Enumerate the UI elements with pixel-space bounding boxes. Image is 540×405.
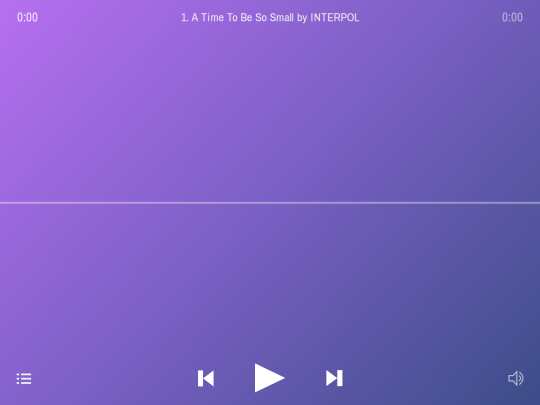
staticText: 1. A Time To Be So Small by INTERPOL xyxy=(181,9,359,25)
button[interactable]: Play xyxy=(248,356,292,400)
button[interactable]: Previous track xyxy=(188,360,224,396)
button[interactable]: Next track xyxy=(316,360,352,396)
staticText: 0:00 xyxy=(502,8,523,26)
staticText: 0:00 xyxy=(17,8,38,26)
button[interactable]: Volume xyxy=(500,362,532,394)
button[interactable]: Playlist xyxy=(6,363,42,395)
